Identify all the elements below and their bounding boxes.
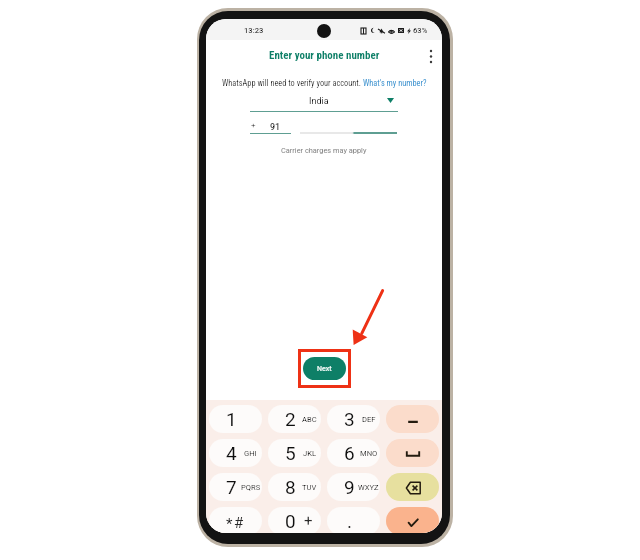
staticText: 13:23 — [244, 26, 264, 35]
button[interactable]: India — [250, 93, 398, 112]
staticText: WXYZ — [358, 483, 379, 492]
staticText: MNO — [360, 449, 378, 458]
button[interactable] — [300, 115, 397, 134]
button[interactable]: . — [327, 507, 380, 533]
staticText: # — [234, 514, 244, 532]
staticText: 1 — [226, 408, 237, 430]
button[interactable]: Done — [386, 507, 439, 533]
button[interactable]: + — [250, 115, 291, 134]
staticText: . — [347, 510, 353, 532]
staticText: TUV — [302, 483, 317, 492]
staticText: 9 — [344, 476, 355, 498]
button[interactable]: 3 — [327, 405, 380, 433]
button[interactable]: 4 — [209, 439, 262, 467]
button[interactable]: 8 — [268, 473, 321, 501]
staticText: 63% — [413, 26, 428, 35]
button[interactable]: * — [209, 507, 262, 533]
staticText: 8 — [285, 476, 296, 498]
staticText: 3 — [344, 408, 355, 430]
staticText: 0 — [285, 510, 296, 532]
staticText: 4 — [226, 442, 237, 464]
staticText: Next — [317, 365, 332, 373]
button[interactable]: 7 — [209, 473, 262, 501]
button[interactable]: What's my number? — [363, 78, 427, 88]
staticText: Enter your phone number — [269, 49, 380, 62]
staticText: * — [226, 515, 233, 533]
staticText: WhatsApp will need to verify your accoun… — [222, 78, 363, 88]
button[interactable]: 2 — [268, 405, 321, 433]
button[interactable]: 9 — [327, 473, 380, 501]
staticText: 5 — [285, 442, 296, 464]
button[interactable]: Dash — [386, 405, 439, 433]
button[interactable]: More options — [422, 47, 440, 65]
staticText: Carrier charges may apply — [281, 146, 367, 155]
button[interactable]: 6 — [327, 439, 380, 467]
staticText: 6 — [344, 442, 355, 464]
staticText: + — [304, 512, 313, 530]
staticText: JKL — [303, 449, 317, 458]
staticText: ABC — [302, 415, 317, 424]
staticText: PQRS — [241, 483, 261, 492]
button[interactable]: Space — [386, 439, 439, 467]
button[interactable]: Next — [303, 357, 346, 380]
staticText: + — [251, 121, 256, 130]
button[interactable]: 1 — [209, 405, 262, 433]
button[interactable]: 0 — [268, 507, 321, 533]
staticText: GHI — [244, 449, 257, 458]
button[interactable]: Backspace — [386, 473, 439, 501]
staticText: 2 — [285, 408, 296, 430]
button[interactable]: 5 — [268, 439, 321, 467]
staticText: 7 — [226, 476, 237, 498]
staticText: 91 — [270, 122, 281, 133]
staticText: India — [309, 96, 329, 107]
staticText: DEF — [362, 415, 376, 424]
